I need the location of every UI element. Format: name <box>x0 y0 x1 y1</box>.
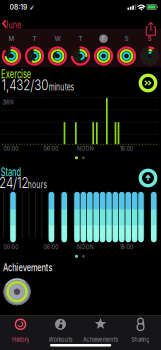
staticText: Workouts <box>46 336 74 343</box>
staticText: Achievements <box>80 336 121 343</box>
staticText: Achievements <box>0 261 63 274</box>
staticText: NOON <box>75 145 95 152</box>
staticText: T <box>32 35 36 42</box>
staticText: 24/12 <box>0 174 33 192</box>
staticText: June <box>1 19 25 31</box>
staticText: NOON <box>75 243 95 251</box>
button[interactable]: June <box>0 0 161 350</box>
staticText: T <box>78 35 82 42</box>
staticText: 1,432/30 <box>0 76 55 94</box>
staticText: M <box>8 35 14 42</box>
staticText: 18:00 <box>118 243 134 251</box>
staticText: S <box>147 35 151 42</box>
staticText: History <box>10 336 30 343</box>
staticText: hours <box>24 179 51 190</box>
staticText: F <box>101 35 105 42</box>
button[interactable]: Workouts <box>0 0 161 350</box>
button[interactable]: Achievements <box>0 0 161 350</box>
button[interactable]: History <box>0 0 161 350</box>
staticText: 2MIN <box>1 99 15 106</box>
staticText: 00:00 <box>2 145 20 152</box>
staticText: 00:00 <box>2 243 20 251</box>
staticText: S <box>124 35 128 42</box>
button[interactable]: Sharing <box>0 0 161 350</box>
button[interactable]: Achievement badge <box>0 0 161 350</box>
staticText: Sharing <box>129 336 151 343</box>
staticText: minutes <box>44 81 79 93</box>
staticText: W <box>54 35 60 42</box>
staticText: 06:00 <box>42 145 60 152</box>
staticText: 06:00 <box>42 243 60 251</box>
staticText: Exercise <box>0 67 39 81</box>
staticText: Stand <box>0 165 26 179</box>
staticText: 18:00 <box>118 145 134 152</box>
staticText: 08:19 <box>8 2 28 11</box>
button[interactable]: Share <box>0 0 161 350</box>
